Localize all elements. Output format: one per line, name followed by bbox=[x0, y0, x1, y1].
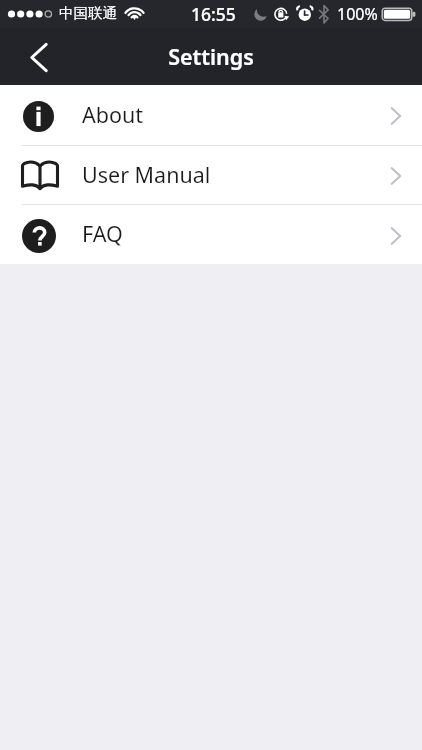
staticText: 中国联通 bbox=[59, 4, 117, 22]
staticText: User Manual bbox=[82, 160, 211, 189]
button[interactable]: FAQ bbox=[0, 205, 422, 264]
staticText: 16:55 bbox=[191, 2, 236, 26]
staticText: 100% bbox=[337, 3, 378, 25]
button[interactable]: User Manual bbox=[0, 146, 422, 204]
button[interactable]: About bbox=[0, 85, 422, 145]
staticText: About bbox=[82, 100, 144, 129]
staticText: FAQ bbox=[82, 219, 123, 248]
staticText: Settings bbox=[168, 42, 254, 71]
button[interactable]: Back bbox=[0, 28, 76, 85]
